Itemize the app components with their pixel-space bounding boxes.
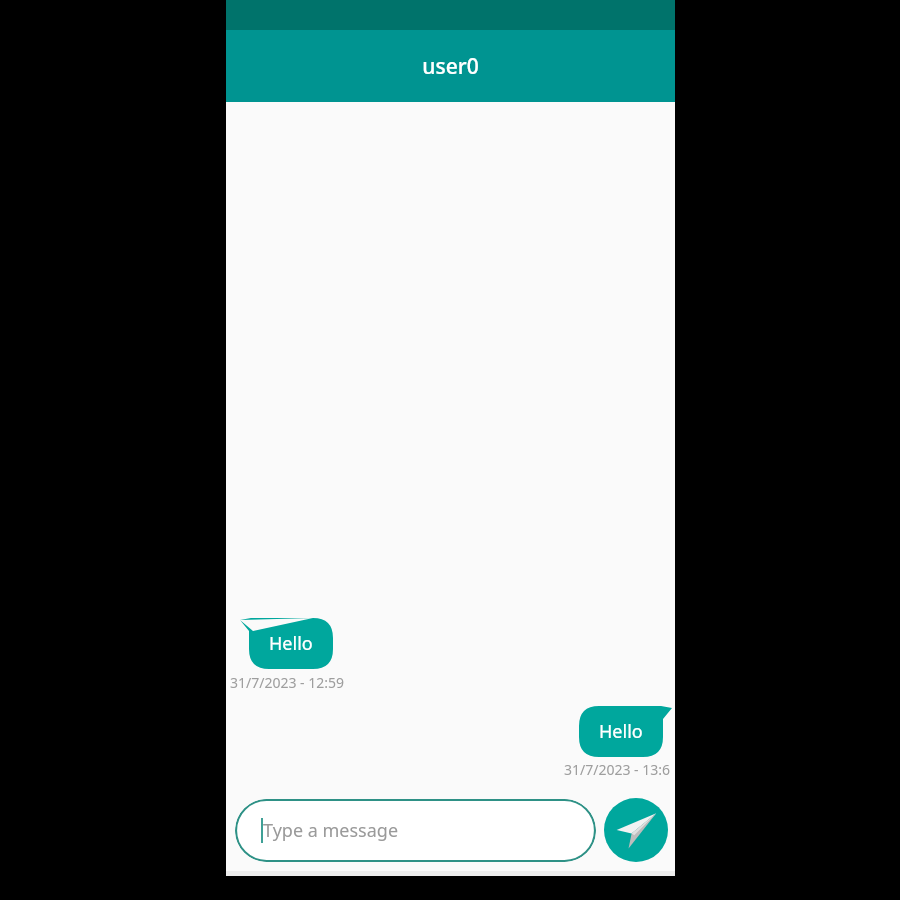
button[interactable]: Type a message <box>235 799 596 862</box>
button[interactable]: Hello <box>579 706 672 757</box>
button[interactable]: Send <box>604 798 668 862</box>
staticText: user0 <box>422 52 479 81</box>
staticText: Hello <box>599 719 643 744</box>
staticText: 31/7/2023 - 13:6 <box>564 760 671 779</box>
button[interactable]: Hello <box>240 618 333 669</box>
staticText: 31/7/2023 - 12:59 <box>230 673 345 692</box>
button[interactable]: user0 <box>226 30 675 102</box>
staticText: Type a message <box>263 818 399 843</box>
staticText: Hello <box>269 631 313 656</box>
